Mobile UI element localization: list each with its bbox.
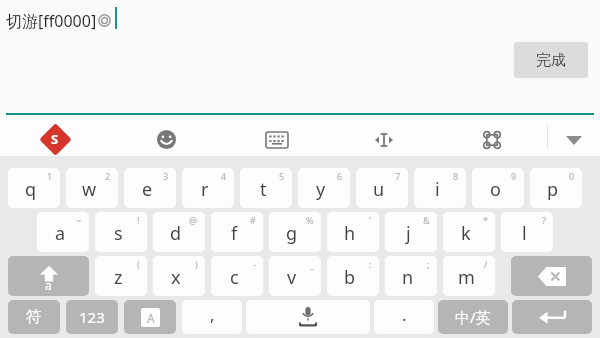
button[interactable]: n	[385, 256, 437, 296]
button[interactable]: f	[211, 212, 263, 252]
staticText: 完成	[536, 51, 566, 70]
button[interactable]: Hide keyboard	[557, 123, 591, 157]
button[interactable]: Space	[246, 300, 370, 334]
staticText: 9	[511, 170, 517, 182]
staticText: 6	[337, 170, 343, 182]
staticText: w	[82, 177, 97, 202]
button[interactable]: w	[66, 168, 118, 208]
button[interactable]: e	[124, 168, 176, 208]
staticText: %	[306, 214, 314, 226]
staticText: s	[114, 221, 123, 246]
button[interactable]: s	[95, 212, 147, 252]
staticText: 0	[569, 170, 575, 182]
button[interactable]: v	[269, 256, 321, 296]
staticText: b	[344, 265, 356, 290]
button[interactable]: Shift	[8, 256, 89, 296]
button[interactable]: .	[374, 300, 434, 334]
staticText: ~	[76, 214, 82, 226]
button[interactable]: r	[182, 168, 234, 208]
staticText: o	[490, 177, 501, 202]
button[interactable]: 中/英	[438, 300, 508, 334]
button[interactable]: Move cursor	[367, 123, 401, 157]
button[interactable]: Keyboard layout	[260, 123, 294, 157]
staticText: 符	[26, 307, 42, 327]
button[interactable]: u	[356, 168, 408, 208]
button[interactable]: 符	[8, 300, 60, 334]
staticText: a	[55, 221, 66, 246]
staticText: 5	[279, 170, 285, 182]
staticText: d	[170, 221, 182, 246]
button[interactable]: j	[385, 212, 437, 252]
staticText: *	[483, 214, 488, 226]
staticText: 7	[395, 170, 401, 182]
staticText: ;	[427, 258, 430, 270]
button[interactable]: Sogou input	[38, 122, 72, 156]
staticText: A	[147, 310, 155, 326]
staticText: )	[195, 258, 198, 270]
button[interactable]: g	[269, 212, 321, 252]
staticText: f	[231, 221, 238, 246]
staticText: x	[171, 265, 181, 290]
button[interactable]: h	[327, 212, 379, 252]
button[interactable]: k	[443, 212, 495, 252]
staticText: 1	[47, 170, 53, 182]
staticText: &	[423, 214, 430, 226]
button[interactable]: p	[530, 168, 582, 208]
staticText: -	[253, 258, 256, 270]
button[interactable]: c	[211, 256, 263, 296]
button[interactable]: Shortcuts	[475, 123, 509, 157]
staticText: u	[373, 177, 385, 202]
button[interactable]: Backspace	[511, 256, 592, 296]
button[interactable]: t	[240, 168, 292, 208]
staticText: '	[369, 214, 372, 226]
button[interactable]: d	[153, 212, 205, 252]
staticText: 123	[79, 307, 105, 327]
staticText: ?	[542, 214, 546, 226]
staticText: k	[461, 221, 471, 246]
staticText: S	[51, 130, 59, 148]
button[interactable]: m	[443, 256, 495, 296]
staticText: t	[260, 177, 267, 202]
staticText: @	[189, 214, 198, 226]
staticText: i	[435, 177, 440, 202]
staticText: v	[287, 265, 297, 290]
staticText: g	[286, 221, 298, 246]
staticText: h	[344, 221, 356, 246]
button[interactable]: ,	[182, 300, 242, 334]
staticText: l	[522, 221, 527, 246]
button[interactable]: 完成	[514, 42, 588, 78]
button[interactable]: l	[501, 212, 553, 252]
staticText: (	[137, 258, 140, 270]
button[interactable]: Emoji	[149, 122, 183, 156]
staticText: .	[402, 303, 407, 326]
staticText: y	[316, 177, 326, 202]
button[interactable]: y	[298, 168, 350, 208]
staticText: 8	[453, 170, 459, 182]
staticText: :	[369, 258, 372, 270]
staticText: r	[201, 177, 209, 202]
staticText: q	[25, 177, 37, 202]
staticText: n	[402, 265, 414, 290]
button[interactable]: q	[8, 168, 60, 208]
staticText: _	[310, 258, 314, 270]
button[interactable]: a	[37, 212, 89, 252]
button[interactable]: b	[327, 256, 379, 296]
staticText: p	[547, 177, 559, 202]
staticText: a	[45, 277, 52, 293]
button[interactable]: o	[472, 168, 524, 208]
staticText: 3	[163, 170, 169, 182]
button[interactable]: Input language	[124, 300, 176, 334]
staticText: #	[250, 214, 256, 226]
staticText: 2	[105, 170, 111, 182]
button[interactable]: x	[153, 256, 205, 296]
staticText: /	[484, 258, 488, 270]
staticText: e	[142, 177, 153, 202]
button[interactable]: 123	[66, 300, 118, 334]
button[interactable]: z	[95, 256, 147, 296]
staticText: c	[230, 265, 239, 290]
staticText: j	[406, 221, 411, 246]
staticText: 4	[221, 170, 227, 182]
button[interactable]: i	[414, 168, 466, 208]
button[interactable]: Enter	[512, 300, 592, 334]
staticText: !	[137, 214, 140, 226]
